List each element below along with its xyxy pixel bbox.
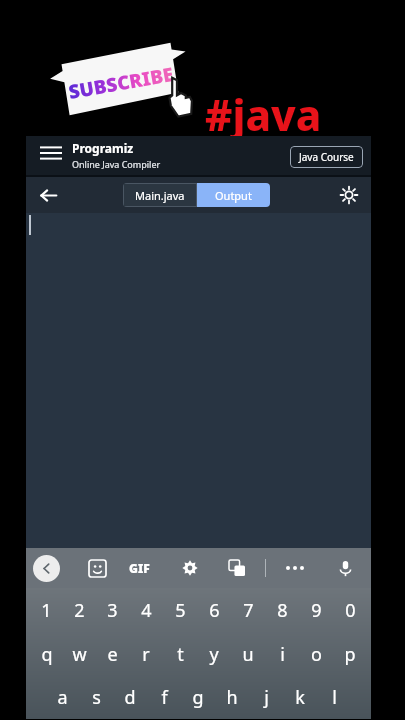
button[interactable]: Translate [222, 553, 252, 583]
button[interactable]: t [163, 632, 197, 676]
staticText: 0 [345, 598, 356, 623]
staticText: j [264, 685, 269, 710]
button[interactable]: h [215, 676, 249, 719]
button[interactable]: Main.java [123, 183, 197, 207]
button[interactable]: d [113, 676, 147, 719]
button[interactable]: a [46, 676, 79, 719]
button[interactable]: 8 [265, 588, 299, 632]
staticText: Java Course [299, 150, 354, 164]
button[interactable]: l [317, 676, 351, 719]
button[interactable]: Back [32, 179, 64, 211]
staticText: 5 [175, 598, 186, 623]
staticText: o [311, 642, 322, 667]
staticText: w [72, 642, 87, 667]
staticText: g [192, 685, 204, 710]
button[interactable]: Output [197, 183, 270, 207]
button[interactable]: k [283, 676, 317, 719]
button[interactable]: Java Course [290, 146, 363, 168]
staticText: f [161, 685, 168, 710]
button[interactable]: More options [278, 551, 312, 585]
staticText: d [124, 685, 136, 710]
button[interactable]: 3 [96, 588, 129, 632]
button[interactable]: Menu [34, 136, 68, 170]
staticText: a [57, 685, 68, 710]
button[interactable]: g [181, 676, 215, 719]
staticText: t [177, 642, 184, 667]
staticText: 4 [141, 598, 152, 623]
staticText: 8 [277, 598, 288, 623]
staticText: y [209, 642, 219, 667]
staticText: #java [205, 86, 322, 143]
button[interactable]: r [129, 632, 163, 676]
button[interactable]: Voice input [330, 553, 360, 583]
button[interactable]: u [231, 632, 265, 676]
staticText: s [92, 685, 101, 710]
button[interactable]: 9 [299, 588, 333, 632]
button[interactable]: p [333, 632, 367, 676]
staticText: Programiz [72, 140, 134, 156]
button[interactable]: 2 [63, 588, 96, 632]
button[interactable]: e [96, 632, 129, 676]
staticText: u [242, 642, 254, 667]
button[interactable]: Settings [175, 553, 205, 583]
staticText: q [41, 642, 53, 667]
button[interactable]: 6 [197, 588, 231, 632]
button[interactable]: q [30, 632, 63, 676]
staticText: 2 [74, 598, 85, 623]
button[interactable]: 4 [129, 588, 163, 632]
button[interactable]: y [197, 632, 231, 676]
staticText: SUBSCRIBE [66, 61, 175, 105]
staticText: h [226, 685, 238, 710]
staticText: k [295, 685, 305, 710]
staticText: r [142, 642, 150, 667]
button[interactable]: 5 [163, 588, 197, 632]
staticText: 6 [209, 598, 220, 623]
staticText: 7 [243, 598, 254, 623]
button[interactable]: 7 [231, 588, 265, 632]
staticText: Online Java Compiler [72, 158, 161, 170]
staticText: e [107, 642, 118, 667]
staticText: Output [215, 188, 252, 203]
staticText: i [280, 642, 285, 667]
button[interactable]: o [299, 632, 333, 676]
staticText: 1 [41, 598, 52, 623]
staticText: p [344, 642, 356, 667]
button[interactable]: Toggle theme [333, 179, 365, 211]
staticText: 3 [107, 598, 118, 623]
staticText: 9 [311, 598, 322, 623]
button[interactable]: 1 [30, 588, 63, 632]
button[interactable]: f [147, 676, 181, 719]
button[interactable]: j [249, 676, 283, 719]
button[interactable]: s [79, 676, 113, 719]
staticText: Main.java [135, 188, 185, 203]
button[interactable]: 0 [333, 588, 367, 632]
staticText: l [332, 685, 337, 710]
button[interactable]: i [265, 632, 299, 676]
button[interactable]: w [63, 632, 96, 676]
button[interactable]: Stickers [82, 553, 112, 583]
button[interactable]: GIF [129, 560, 150, 576]
button[interactable]: Close toolbar [33, 555, 60, 582]
